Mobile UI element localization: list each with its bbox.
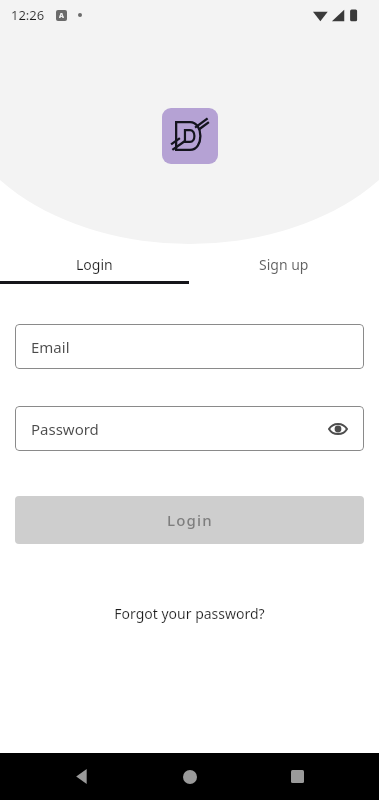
staticText: 12:26 (11, 6, 45, 24)
button[interactable]: Email (15, 324, 364, 369)
staticText: Login (76, 255, 113, 274)
button[interactable]: Login (15, 496, 364, 544)
staticText: Sign up (259, 255, 309, 274)
button[interactable]: Show password (324, 415, 352, 443)
button[interactable]: Password (15, 406, 364, 451)
button[interactable]: Back (57, 753, 107, 800)
button[interactable]: Login (0, 247, 189, 281)
button[interactable]: Forgot your password? (104, 599, 275, 628)
staticText: Login (167, 510, 213, 530)
button[interactable]: Recent apps (272, 753, 322, 800)
staticText: Email (31, 337, 70, 357)
staticText: Password (31, 419, 99, 439)
button[interactable]: Sign up (189, 247, 379, 281)
staticText: Forgot your password? (114, 604, 265, 623)
staticText: A (59, 11, 64, 21)
button[interactable]: Home (165, 753, 215, 800)
